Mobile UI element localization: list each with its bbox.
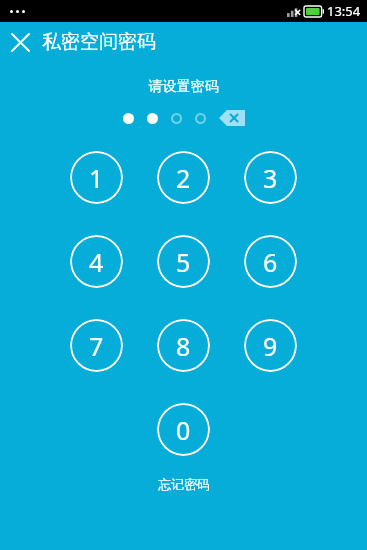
staticText: 6: [263, 245, 278, 279]
button[interactable]: 8: [157, 319, 210, 372]
button[interactable]: 3: [244, 151, 297, 204]
button[interactable]: 0: [157, 403, 210, 456]
staticText: 0: [176, 413, 191, 447]
staticText: 8: [176, 329, 191, 363]
button[interactable]: 7: [70, 319, 123, 372]
button[interactable]: 9: [244, 319, 297, 372]
staticText: 13:54: [327, 2, 361, 20]
button[interactable]: 2: [157, 151, 210, 204]
staticText: 7: [89, 329, 104, 363]
staticText: 请设置密码: [0, 78, 367, 96]
button[interactable]: 5: [157, 235, 210, 288]
button[interactable]: 1: [70, 151, 123, 204]
staticText: 3: [263, 161, 278, 195]
button[interactable]: 忘记密码: [0, 472, 367, 496]
staticText: 2: [176, 161, 191, 195]
button[interactable]: Close: [0, 22, 40, 62]
staticText: 4: [89, 245, 104, 279]
staticText: 1: [89, 161, 104, 195]
button[interactable]: Backspace: [219, 110, 245, 126]
button[interactable]: 4: [70, 235, 123, 288]
staticText: 私密空间密码: [42, 30, 156, 54]
staticText: 9: [263, 329, 278, 363]
staticText: 忘记密码: [158, 476, 210, 492]
button[interactable]: 6: [244, 235, 297, 288]
staticText: 5: [176, 245, 191, 279]
